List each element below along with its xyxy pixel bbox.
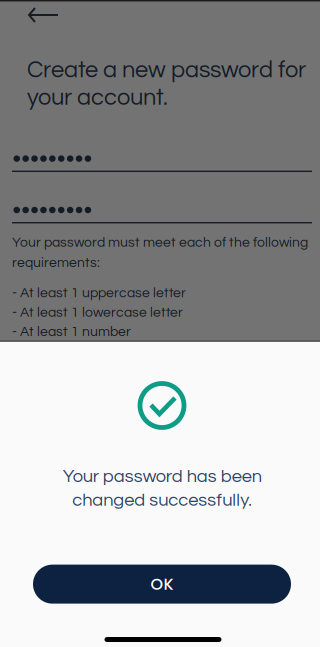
staticText: Your password has been changed successfu… [62,467,261,510]
staticText: Your password must meet each of the foll… [12,235,308,270]
staticText: - At least 1 number [12,325,131,339]
staticText: - At least 1 lowercase letter [12,305,183,320]
staticText: OK [150,573,173,595]
button[interactable]: Back [0,2,73,28]
button[interactable]: OK [33,565,291,604]
staticText: - At least 1 uppercase letter [12,286,186,300]
staticText: Create a new password for your account. [27,58,306,110]
